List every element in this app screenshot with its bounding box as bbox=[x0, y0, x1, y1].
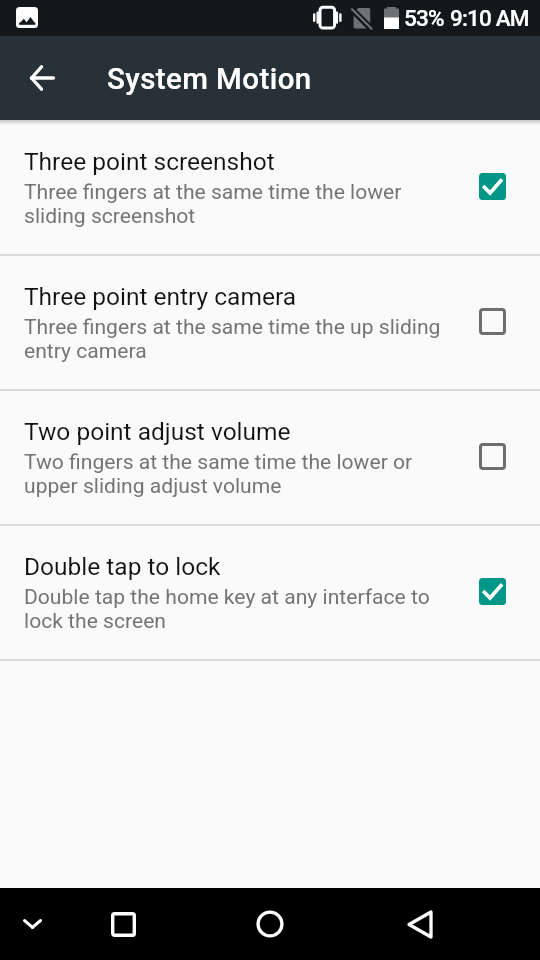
button[interactable]: Two point adjust volume bbox=[0, 391, 540, 524]
button[interactable]: Back bbox=[384, 888, 456, 960]
button[interactable]: Three point screenshot bbox=[0, 121, 540, 254]
staticText: System Motion bbox=[107, 62, 312, 97]
button[interactable]: Recent apps bbox=[87, 888, 159, 960]
staticText: Three fingers at the same time the up sl… bbox=[24, 314, 444, 363]
staticText: 53% bbox=[404, 5, 444, 31]
button[interactable]: Navigate up bbox=[18, 54, 66, 102]
staticText: Double tap to lock bbox=[24, 552, 221, 581]
staticText: 9:10 AM bbox=[450, 5, 529, 31]
staticText: Two point adjust volume bbox=[24, 417, 291, 446]
staticText: Three point screenshot bbox=[24, 147, 275, 176]
button[interactable]: Enabled bbox=[470, 164, 514, 208]
button[interactable]: Disabled bbox=[470, 434, 514, 478]
button[interactable]: Enabled bbox=[470, 569, 514, 613]
button[interactable]: Disabled bbox=[470, 299, 514, 343]
staticText: Double tap the home key at any interface… bbox=[24, 584, 444, 633]
button[interactable]: Double tap to lock bbox=[0, 526, 540, 659]
button[interactable]: Home bbox=[234, 888, 306, 960]
staticText: Three point entry camera bbox=[24, 282, 297, 311]
staticText: Two fingers at the same time the lower o… bbox=[24, 449, 444, 498]
button[interactable]: Hide keyboard bbox=[0, 888, 68, 960]
button[interactable]: Three point entry camera bbox=[0, 256, 540, 389]
staticText: Three fingers at the same time the lower… bbox=[24, 179, 444, 228]
